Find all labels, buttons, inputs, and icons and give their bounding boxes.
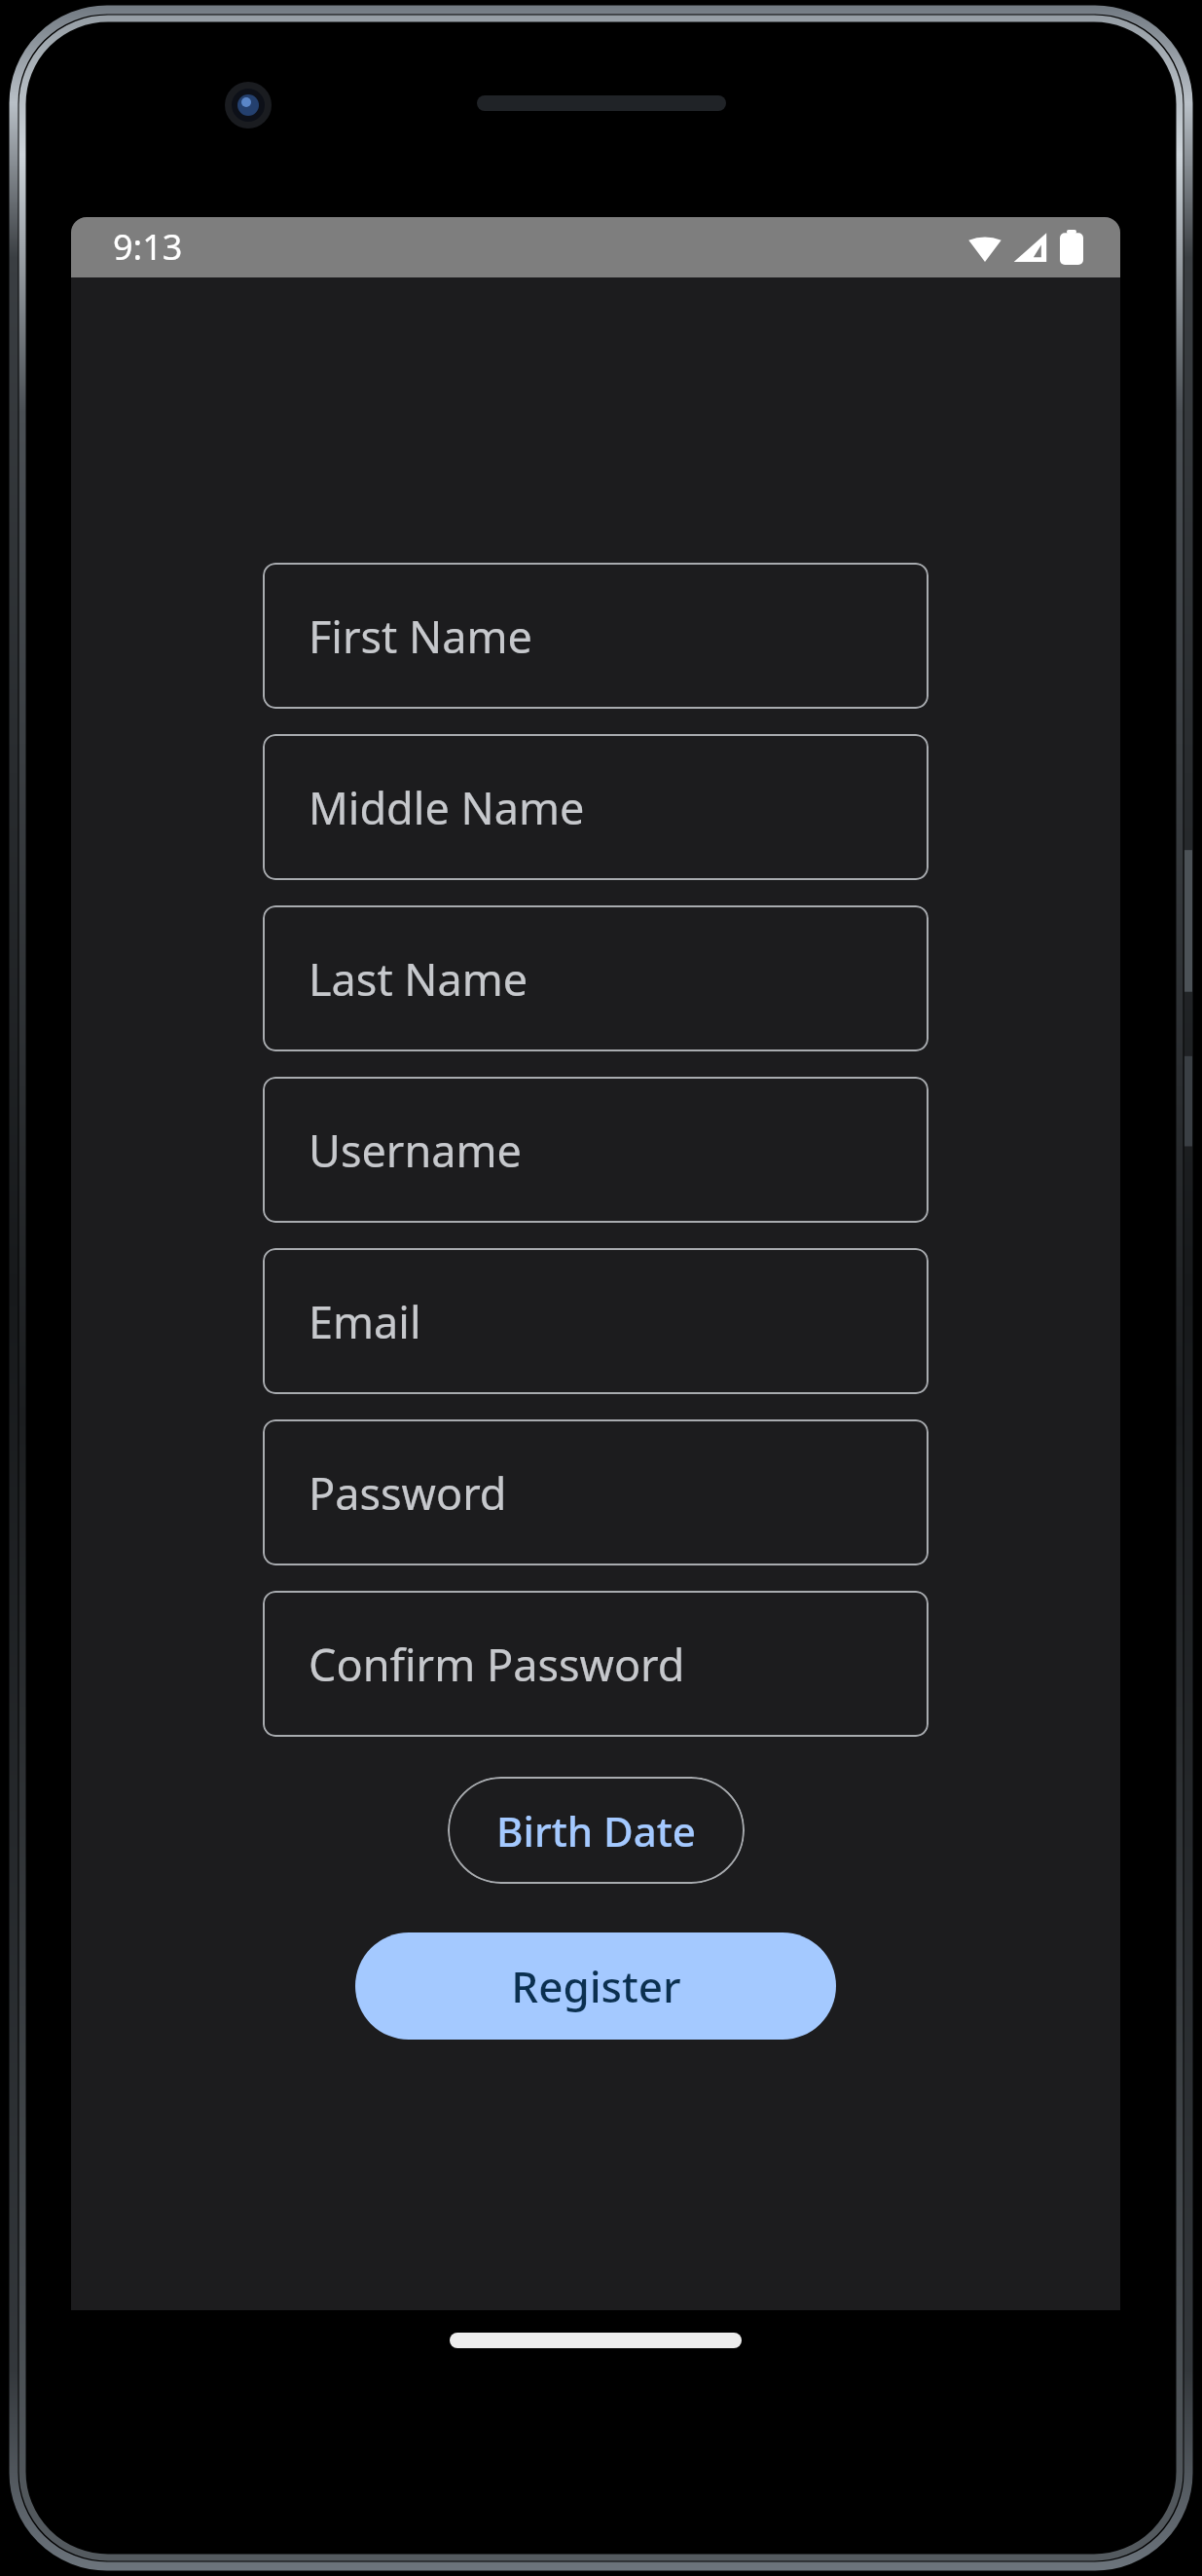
button[interactable]: Birth Date: [448, 1777, 745, 1884]
staticText: Last Name: [309, 949, 528, 1009]
staticText: Email: [309, 1292, 421, 1351]
button[interactable]: First Name: [263, 563, 929, 709]
staticText: Username: [309, 1121, 522, 1180]
button[interactable]: Confirm Password: [263, 1591, 929, 1737]
staticText: Birth Date: [496, 1803, 696, 1858]
staticText: Middle Name: [309, 778, 585, 837]
staticText: 9:13: [113, 223, 183, 271]
button[interactable]: Middle Name: [263, 734, 929, 880]
staticText: Password: [309, 1463, 507, 1523]
button[interactable]: Email: [263, 1248, 929, 1394]
button[interactable]: Username: [263, 1077, 929, 1223]
staticText: First Name: [309, 607, 532, 666]
button[interactable]: Last Name: [263, 905, 929, 1051]
staticText: Confirm Password: [309, 1635, 685, 1694]
button[interactable]: Password: [263, 1419, 929, 1565]
staticText: Register: [511, 1957, 681, 2015]
button[interactable]: Register: [355, 1932, 836, 2040]
